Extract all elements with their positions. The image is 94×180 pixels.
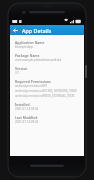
staticText: 2021-07-14 09:32 xyxy=(15,107,39,111)
staticText: Application Name xyxy=(15,40,45,44)
staticText: com.example.photoshare.android xyxy=(15,58,62,62)
staticText: Package Name xyxy=(15,53,40,57)
staticText: android.permission.ACCESS_NETWORK_STATE … xyxy=(15,89,77,93)
staticText: Example App xyxy=(15,45,33,49)
staticText: android.permission.WRITE_EXTERNAL_STORAG… xyxy=(15,94,75,98)
staticText: 3.1 xyxy=(15,71,20,75)
staticText: App Details xyxy=(22,27,52,34)
button[interactable]: Required Permissions xyxy=(15,79,80,102)
button[interactable]: Package Name xyxy=(15,53,80,66)
staticText: Installed xyxy=(15,102,30,106)
button[interactable]: Version xyxy=(15,66,80,79)
button[interactable]: Application Name xyxy=(15,40,80,53)
button[interactable]: Installed xyxy=(15,102,80,115)
staticText: android.permission.INTERNET xyxy=(15,84,48,88)
button[interactable]: Last Modified xyxy=(15,115,80,128)
staticText: 2021-07-14 09:32 xyxy=(15,120,39,124)
staticText: Version xyxy=(15,66,28,70)
button[interactable]: Navigate up xyxy=(10,25,20,35)
staticText: Last Modified xyxy=(15,115,38,119)
staticText: Required Permissions xyxy=(15,79,51,83)
